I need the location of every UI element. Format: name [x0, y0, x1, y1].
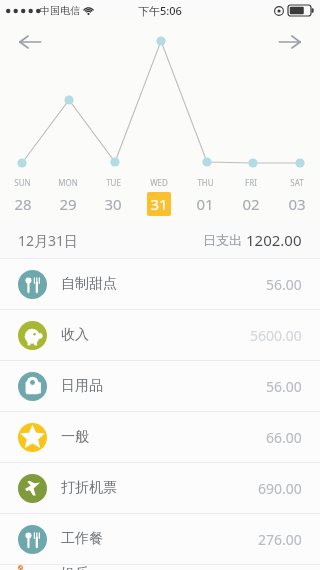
staticText: 31: [150, 194, 168, 214]
staticText: 01: [196, 194, 214, 214]
staticText: 娱乐: [61, 565, 89, 570]
staticText: 29: [59, 194, 77, 214]
staticText: 1202.00: [246, 230, 302, 250]
button[interactable]: 工作餐: [0, 514, 320, 564]
staticText: 02: [242, 194, 260, 214]
button[interactable]: TUE: [90, 177, 136, 216]
staticText: 中国电信: [40, 4, 80, 17]
staticText: FRI: [245, 177, 257, 188]
button[interactable]: 日用品: [0, 361, 320, 411]
staticText: 工作餐: [61, 530, 103, 548]
staticText: 66.00: [266, 428, 302, 447]
button[interactable]: WED: [136, 177, 182, 216]
staticText: 56.00: [266, 377, 302, 396]
button[interactable]: FRI: [228, 177, 274, 216]
staticText: 日支出: [203, 231, 246, 249]
button[interactable]: SUN: [0, 177, 45, 216]
staticText: 276.00: [258, 530, 302, 549]
staticText: SUN: [14, 177, 31, 188]
staticText: 56.00: [266, 275, 302, 294]
staticText: 12月31日: [18, 231, 79, 250]
button[interactable]: 自制甜点: [0, 259, 320, 309]
staticText: THU: [197, 177, 214, 188]
staticText: 690.00: [258, 479, 302, 498]
button[interactable]: Previous week: [8, 20, 52, 64]
button[interactable]: SAT: [274, 177, 320, 216]
button[interactable]: 一般: [0, 412, 320, 462]
staticText: MON: [58, 177, 78, 188]
staticText: SAT: [290, 177, 304, 188]
button[interactable]: 娱乐: [0, 565, 320, 570]
button[interactable]: MON: [45, 177, 90, 216]
staticText: 28: [14, 194, 32, 214]
button[interactable]: Next week: [268, 20, 312, 64]
staticText: 自制甜点: [61, 275, 117, 293]
staticText: TUE: [106, 177, 121, 188]
staticText: WED: [150, 177, 168, 188]
staticText: 5600.00: [250, 326, 302, 345]
staticText: 下午5:06: [138, 3, 182, 18]
staticText: 日用品: [61, 377, 103, 395]
staticText: 一般: [61, 428, 89, 446]
button[interactable]: 打折机票: [0, 463, 320, 513]
button[interactable]: 收入: [0, 310, 320, 360]
staticText: 打折机票: [61, 479, 117, 497]
staticText: 03: [288, 194, 306, 214]
staticText: 30: [104, 194, 122, 214]
staticText: 收入: [61, 326, 89, 344]
button[interactable]: THU: [182, 177, 228, 216]
